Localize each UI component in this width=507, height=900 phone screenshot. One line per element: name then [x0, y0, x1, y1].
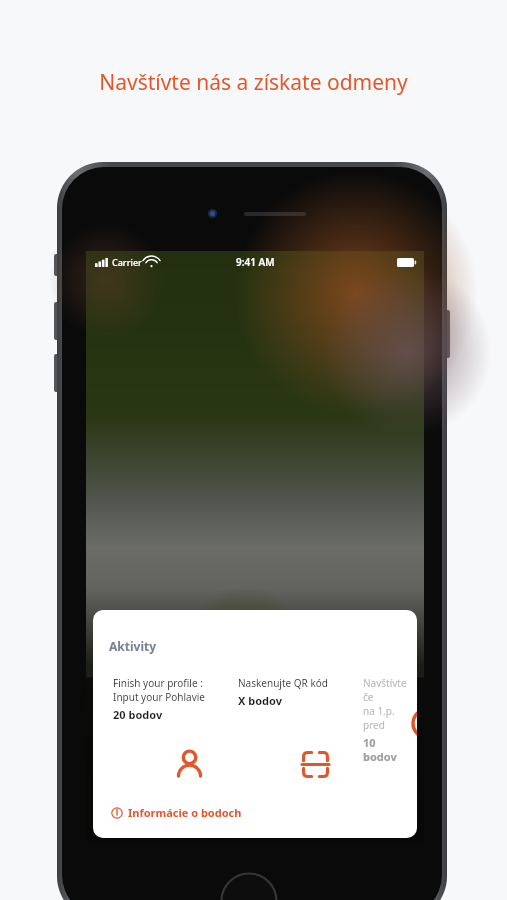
other: Profile	[175, 750, 204, 779]
staticText: Navštívte če	[363, 676, 411, 704]
staticText: na 1.p. pred	[363, 704, 411, 732]
staticText: 20 bodov	[113, 707, 163, 722]
staticText: 10 bodov	[363, 735, 411, 764]
other: Scan QR code	[302, 751, 329, 778]
staticText: Navštívte nás a získate odmeny	[0, 68, 507, 97]
staticText: Aktivity	[109, 638, 157, 654]
button[interactable]: Navštívte če	[354, 665, 417, 789]
staticText: 9:41 AM	[236, 255, 275, 269]
staticText: Naskenujte QR kód	[238, 676, 328, 690]
staticText: Input your Pohlavie	[113, 690, 205, 704]
staticText: Carrier	[112, 256, 142, 268]
staticText: X bodov	[238, 693, 282, 708]
other: Home	[220, 872, 278, 900]
button[interactable]: Finish your profile :	[104, 665, 216, 789]
button[interactable]: Informácie o bodoch	[109, 803, 244, 822]
staticText: Informácie o bodoch	[128, 805, 242, 820]
staticText: Finish your profile :	[113, 676, 203, 690]
button[interactable]: Naskenujte QR kód	[229, 665, 341, 789]
